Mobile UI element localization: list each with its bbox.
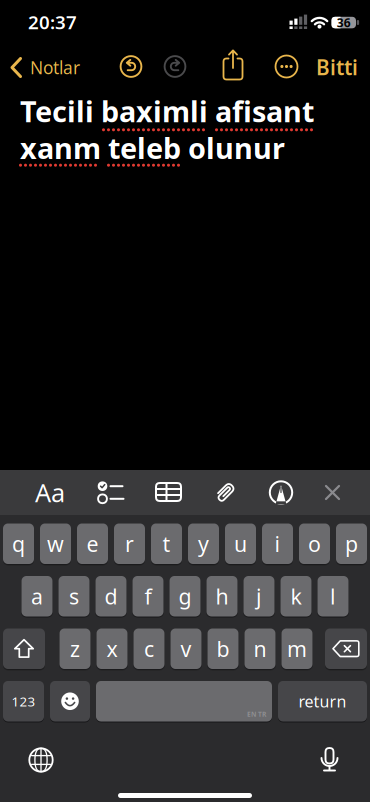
button[interactable]: a	[21, 576, 52, 616]
button[interactable]: Share	[220, 49, 246, 81]
button[interactable]: b	[207, 628, 238, 669]
button[interactable]: Markup	[268, 479, 294, 505]
button[interactable]: Dictate	[318, 747, 340, 772]
staticText: c	[144, 635, 154, 663]
button[interactable]: Redo	[163, 55, 186, 78]
button[interactable]: z	[59, 628, 90, 669]
staticText: s	[69, 582, 79, 610]
staticText: xanm teleb olunur	[20, 129, 285, 167]
staticText: l	[330, 582, 336, 610]
button[interactable]: h	[206, 576, 237, 616]
staticText: t	[162, 530, 170, 558]
staticText: u	[234, 530, 247, 558]
staticText: x	[106, 635, 117, 663]
staticText: 20:37	[28, 9, 77, 34]
button[interactable]: Table	[155, 482, 182, 502]
staticText: Aa	[35, 476, 65, 509]
button[interactable]: t	[151, 523, 182, 564]
staticText: p	[345, 530, 358, 558]
button[interactable]: r	[114, 523, 145, 564]
button[interactable]: x	[96, 628, 127, 669]
staticText: r	[125, 530, 134, 558]
button[interactable]: Delete	[325, 628, 367, 669]
staticText: Tecili baximli afisant	[20, 92, 314, 130]
button[interactable]: v	[170, 628, 201, 669]
staticText: n	[253, 635, 266, 663]
button[interactable]: o	[299, 523, 330, 564]
button[interactable]: p	[336, 523, 367, 564]
button[interactable]: return	[278, 681, 367, 721]
staticText: d	[104, 582, 117, 610]
staticText: g	[178, 582, 191, 610]
button[interactable]: g	[169, 576, 200, 616]
button[interactable]: Bitti	[316, 53, 358, 81]
button[interactable]: Checklist	[94, 480, 128, 505]
button[interactable]: More	[274, 54, 298, 78]
staticText: 36	[337, 15, 351, 30]
button[interactable]: j	[243, 576, 274, 616]
button[interactable]: w	[40, 523, 71, 564]
button[interactable]: l	[317, 576, 348, 616]
button[interactable]: c	[133, 628, 164, 669]
button[interactable]: Emoji	[50, 681, 90, 721]
button[interactable]: Undo	[119, 55, 142, 78]
staticText: j	[256, 582, 262, 610]
button[interactable]: Dismiss	[324, 484, 341, 501]
staticText: w	[47, 530, 64, 558]
staticText: Notlar	[30, 56, 80, 79]
staticText: return	[298, 691, 346, 712]
button[interactable]: 123	[3, 681, 44, 721]
staticText: Bitti	[316, 53, 358, 81]
button[interactable]: Next keyboard	[28, 747, 54, 773]
staticText: v	[180, 635, 191, 663]
button[interactable]: Shift	[3, 628, 45, 669]
staticText: b	[216, 635, 229, 663]
button[interactable]: Format	[28, 470, 72, 515]
button[interactable]: q	[3, 523, 34, 564]
staticText: z	[70, 635, 80, 663]
button[interactable]: Notlar	[10, 56, 80, 79]
staticText: f	[144, 582, 151, 610]
staticText: o	[308, 530, 321, 558]
button[interactable]: f	[132, 576, 163, 616]
button[interactable]: e	[77, 523, 108, 564]
button[interactable]: y	[188, 523, 219, 564]
button[interactable]: m	[281, 628, 312, 669]
staticText: 123	[11, 692, 35, 710]
staticText: i	[274, 530, 280, 558]
staticText: m	[287, 635, 307, 663]
staticText: h	[215, 582, 228, 610]
button[interactable]: n	[244, 628, 275, 669]
button[interactable]: i	[262, 523, 293, 564]
staticText: k	[290, 582, 301, 610]
staticText: a	[31, 582, 43, 610]
button[interactable]: Space	[96, 681, 272, 721]
button[interactable]: k	[280, 576, 311, 616]
staticText: e	[86, 530, 98, 558]
button[interactable]: Attach	[213, 480, 237, 504]
button[interactable]: u	[225, 523, 256, 564]
button[interactable]: d	[95, 576, 126, 616]
staticText: q	[12, 530, 25, 558]
staticText: y	[198, 530, 209, 558]
staticText: EN TR	[247, 710, 266, 718]
button[interactable]: s	[58, 576, 89, 616]
